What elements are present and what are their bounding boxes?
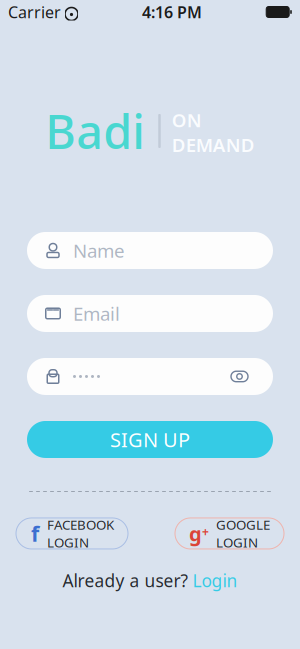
staticText: Already a user? [62,569,188,592]
staticText: GOOGLE LOGIN [216,516,270,551]
staticText: ON [172,108,202,132]
staticText: Email [73,301,120,326]
staticText: FACEBOOK LOGIN [47,516,114,551]
button[interactable]: Already a user? [62,569,237,592]
button[interactable]: g [175,518,284,549]
staticText: Login [192,569,237,592]
staticText: DEMAND [172,132,255,157]
button[interactable]: SIGN UP [27,421,273,458]
button[interactable]: Show password [224,364,255,389]
staticText: f [31,519,39,548]
button[interactable]: f [16,518,128,549]
staticText: + [202,523,209,539]
staticText: Name [73,238,125,263]
staticText: g [189,520,202,547]
staticText: Carrier [8,1,61,23]
staticText: SIGN UP [110,426,190,453]
staticText: Badi [45,100,145,162]
staticText: 4:16 PM [142,1,202,23]
